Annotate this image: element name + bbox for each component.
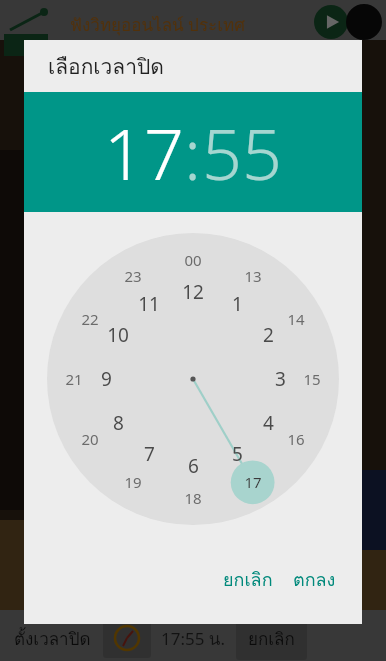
staticText: 16 bbox=[287, 429, 305, 449]
staticText: 13 bbox=[244, 266, 262, 286]
button[interactable]: ยกเลิก bbox=[236, 617, 307, 660]
staticText: ตั้งเวลาปิด bbox=[14, 625, 91, 652]
staticText: 9 bbox=[101, 366, 112, 392]
button[interactable]: 20 bbox=[70, 427, 110, 451]
button[interactable]: 15 bbox=[292, 367, 332, 391]
staticText: 17 bbox=[104, 105, 184, 200]
button[interactable]: 10 bbox=[98, 322, 138, 348]
button[interactable]: 12 bbox=[173, 279, 213, 305]
button[interactable]: 18 bbox=[173, 486, 213, 510]
staticText: 4 bbox=[263, 410, 274, 436]
button[interactable]: 8 bbox=[98, 410, 138, 436]
button[interactable]: Clock bbox=[103, 618, 151, 658]
button[interactable]: 11 bbox=[129, 291, 169, 317]
staticText: ฟังวิทยุออนไลน์ ประเทศ bbox=[70, 11, 245, 38]
staticText: 6 bbox=[188, 453, 199, 479]
staticText: 1 bbox=[232, 291, 243, 317]
button[interactable]: ยกเลิก bbox=[213, 559, 283, 600]
staticText: 22 bbox=[81, 309, 99, 329]
button[interactable]: 23 bbox=[113, 264, 153, 288]
staticText: 10 bbox=[107, 322, 129, 348]
button[interactable]: 16 bbox=[276, 427, 316, 451]
button[interactable]: 55 bbox=[202, 105, 282, 200]
staticText: 17:55 น. bbox=[161, 625, 226, 652]
button[interactable]: 22 bbox=[70, 307, 110, 331]
button[interactable]: 00 bbox=[173, 248, 213, 272]
staticText: 8 bbox=[113, 410, 124, 436]
button[interactable]: 9 bbox=[86, 366, 126, 392]
button[interactable]: 14 bbox=[276, 307, 316, 331]
staticText: เลือกเวลาปิด bbox=[48, 50, 164, 83]
staticText: : bbox=[184, 105, 202, 200]
staticText: 00 bbox=[184, 250, 202, 270]
staticText: ตกลง bbox=[293, 565, 336, 594]
staticText: 2 bbox=[263, 322, 274, 348]
button[interactable]: 2 bbox=[248, 322, 288, 348]
staticText: 20 bbox=[81, 429, 99, 449]
staticText: 7 bbox=[144, 441, 155, 467]
staticText: 3 bbox=[275, 366, 286, 392]
button[interactable]: 5 bbox=[217, 441, 257, 467]
button[interactable]: 3 bbox=[260, 366, 300, 392]
other: Play bbox=[314, 5, 348, 39]
button[interactable]: 17 bbox=[104, 105, 184, 200]
staticText: 23 bbox=[124, 266, 142, 286]
staticText: 5 bbox=[232, 441, 243, 467]
staticText: 55 bbox=[202, 105, 282, 200]
staticText: 19 bbox=[124, 472, 142, 492]
button[interactable]: 13 bbox=[233, 264, 273, 288]
staticText: ยกเลิก bbox=[223, 565, 273, 594]
button[interactable]: 7 bbox=[129, 441, 169, 467]
staticText: 12 bbox=[182, 279, 204, 305]
staticText: 17 bbox=[244, 472, 262, 492]
staticText: 15 bbox=[303, 369, 321, 389]
button[interactable]: 4 bbox=[248, 410, 288, 436]
button[interactable]: 17 bbox=[233, 470, 273, 494]
button[interactable]: ตกลง bbox=[283, 559, 346, 600]
staticText: ยกเลิก bbox=[248, 625, 295, 652]
staticText: 21 bbox=[65, 369, 83, 389]
button[interactable]: 1 bbox=[217, 291, 257, 317]
button[interactable]: 6 bbox=[173, 453, 213, 479]
staticText: 18 bbox=[184, 488, 202, 508]
button[interactable]: 19 bbox=[113, 470, 153, 494]
staticText: 11 bbox=[138, 291, 160, 317]
other: Power bbox=[346, 4, 382, 40]
staticText: 14 bbox=[287, 309, 305, 329]
button[interactable]: 21 bbox=[54, 367, 94, 391]
